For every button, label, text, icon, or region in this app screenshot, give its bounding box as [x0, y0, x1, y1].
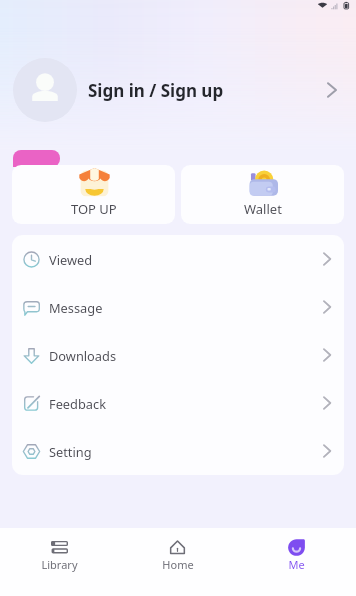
button[interactable]: Downloads — [12, 331, 344, 379]
button[interactable]: Home — [118, 528, 237, 596]
staticText: Downloads — [49, 347, 117, 364]
button[interactable]: Sign in / Sign up — [0, 58, 356, 122]
button[interactable]: Message — [12, 283, 344, 331]
staticText: Sign in / Sign up — [88, 79, 224, 102]
button[interactable]: Setting — [12, 427, 344, 475]
button[interactable]: Me — [237, 528, 356, 596]
staticText: Home — [162, 557, 194, 572]
button[interactable]: Library — [0, 528, 118, 596]
staticText: Message — [49, 299, 103, 316]
staticText: Setting — [49, 443, 92, 460]
staticText: Wallet — [244, 200, 282, 218]
button[interactable]: Wallet — [181, 165, 344, 224]
button[interactable]: Feedback — [12, 379, 344, 427]
staticText: Me — [288, 557, 305, 572]
staticText: TOP UP — [71, 200, 117, 218]
staticText: Library — [41, 557, 78, 572]
button[interactable]: Viewed — [12, 235, 344, 283]
staticText: Viewed — [49, 251, 93, 268]
staticText: Feedback — [49, 395, 106, 412]
button[interactable]: TOP UP — [12, 165, 175, 224]
